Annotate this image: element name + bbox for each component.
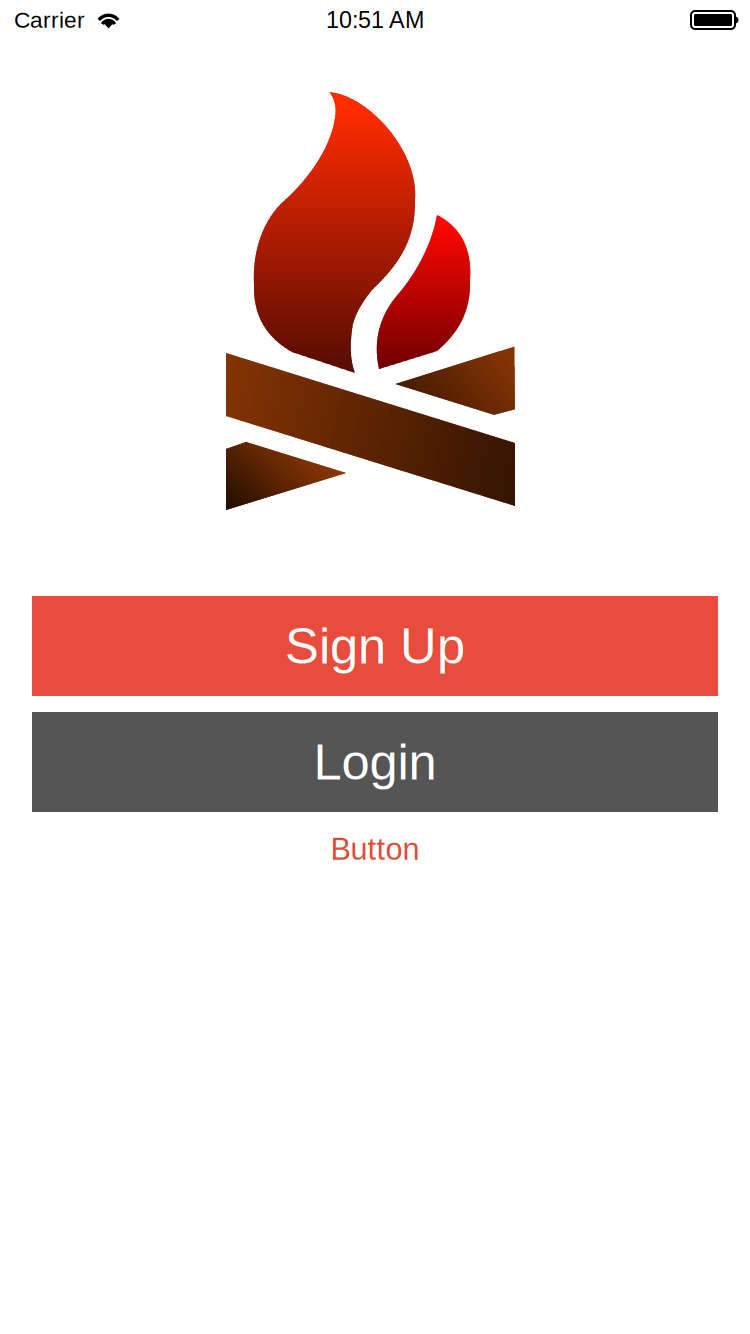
staticText: 10:51 AM <box>326 7 424 33</box>
staticText: Carrier <box>14 7 85 33</box>
staticText: Sign Up <box>285 618 465 674</box>
staticText: Login <box>313 734 436 790</box>
button[interactable]: Button <box>32 831 718 867</box>
staticText: Button <box>330 832 419 866</box>
button[interactable]: Sign Up <box>32 596 718 696</box>
button[interactable]: Login <box>32 712 718 812</box>
